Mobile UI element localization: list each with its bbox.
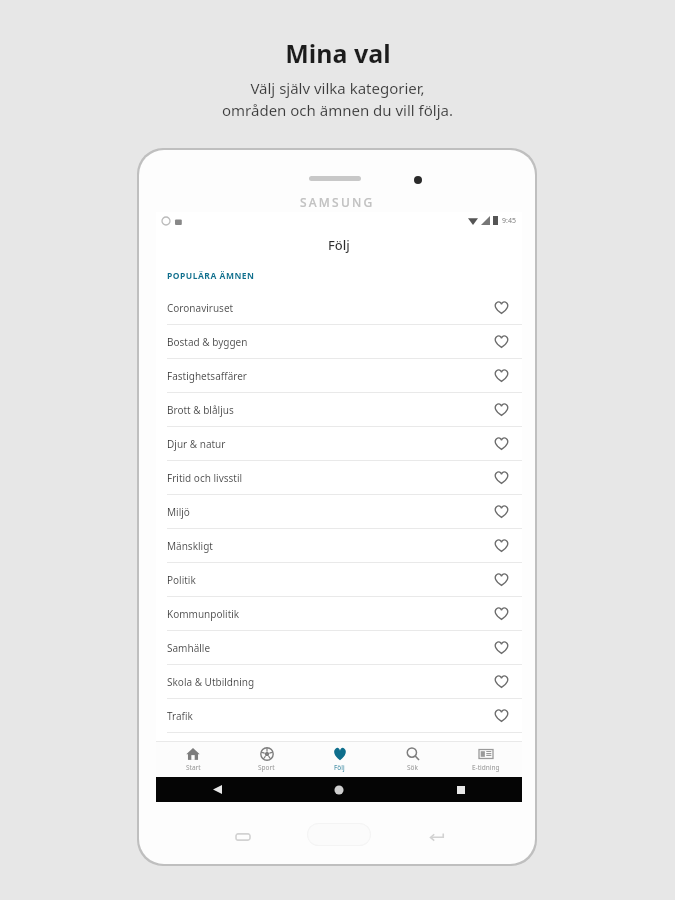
staticText: Sök	[407, 763, 418, 772]
button[interactable]: Coronaviruset	[156, 291, 522, 325]
button[interactable]: Följ	[303, 742, 376, 777]
button[interactable]: Fastighetsaffärer	[156, 359, 522, 393]
other: Följ Politik	[494, 573, 509, 586]
other: Följ Fritid och livsstil	[494, 471, 509, 484]
staticText: Välj själv vilka kategorier,	[250, 78, 425, 98]
button[interactable]: Brott & blåljus	[156, 393, 522, 427]
staticText: Start	[186, 763, 201, 772]
button[interactable]: Fritid och livsstil	[156, 461, 522, 495]
staticText: 9:45	[502, 216, 516, 226]
staticText: Trafik	[167, 709, 193, 723]
staticText: Följ	[328, 236, 350, 254]
staticText: Kommunpolitik	[167, 607, 240, 621]
staticText: Samhälle	[167, 641, 211, 655]
button[interactable]: Miljö	[156, 495, 522, 529]
other: Home	[334, 785, 344, 795]
other: Följ Samhälle	[494, 641, 509, 654]
staticText: Skola & Utbildning	[167, 675, 255, 689]
button[interactable]: Bostad & byggen	[156, 325, 522, 359]
button[interactable]: Trafik	[156, 699, 522, 733]
staticText: Brott & blåljus	[167, 403, 234, 417]
staticText: Politik	[167, 573, 196, 587]
staticText: E-tidning	[472, 763, 500, 772]
button[interactable]: Samhälle	[156, 631, 522, 665]
staticText: POPULÄRA ÄMNEN	[167, 270, 255, 282]
button[interactable]: Mänskligt	[156, 529, 522, 563]
other: Följ Skola & Utbildning	[494, 675, 509, 688]
staticText: Miljö	[167, 505, 190, 519]
staticText: Bostad & byggen	[167, 335, 248, 349]
other: Följ Mänskligt	[494, 539, 509, 552]
staticText: Coronaviruset	[167, 301, 234, 315]
staticText: områden och ämnen du vill följa.	[222, 100, 453, 120]
button[interactable]: Skola & Utbildning	[156, 665, 522, 699]
staticText: Följ	[334, 763, 345, 772]
button[interactable]: Start	[156, 742, 230, 777]
button[interactable]: Sport	[230, 742, 303, 777]
other: Följ Miljö	[494, 505, 509, 518]
button[interactable]: Djur & natur	[156, 427, 522, 461]
staticText: Fritid och livsstil	[167, 471, 243, 485]
staticText: SAMSUNG	[300, 194, 375, 210]
other: Följ Djur & natur	[494, 437, 509, 450]
other: Följ Brott & blåljus	[494, 403, 509, 416]
other: Följ Coronaviruset	[494, 301, 509, 314]
staticText: Mina val	[285, 36, 391, 70]
other: Back	[213, 785, 222, 794]
staticText: Djur & natur	[167, 437, 226, 451]
button[interactable]: Sök	[376, 742, 449, 777]
button[interactable]: Politik	[156, 563, 522, 597]
other: Följ Fastighetsaffärer	[494, 369, 509, 382]
button[interactable]: Kommunpolitik	[156, 597, 522, 631]
staticText: Mänskligt	[167, 539, 213, 553]
other: Följ Trafik	[494, 709, 509, 722]
button[interactable]: E-tidning	[449, 742, 522, 777]
other: Följ Kommunpolitik	[494, 607, 509, 620]
other: Följ Bostad & byggen	[494, 335, 509, 348]
staticText: Fastighetsaffärer	[167, 369, 247, 383]
staticText: Sport	[258, 763, 275, 772]
